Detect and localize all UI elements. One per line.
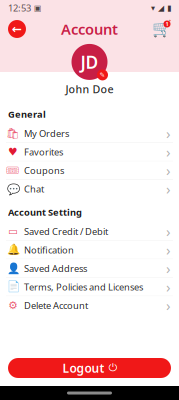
- staticText: Notification: [24, 244, 74, 256]
- staticText: ▾ ◢ ▮: [151, 3, 171, 13]
- staticText: ▣: [31, 3, 42, 13]
- staticText: ›: [166, 295, 171, 315]
- button[interactable]: ⚙: [0, 296, 179, 314]
- staticText: 🔔: [6, 244, 19, 256]
- staticText: 1: [165, 20, 168, 28]
- staticText: 📄: [6, 281, 19, 293]
- button[interactable]: 👤: [0, 259, 179, 277]
- staticText: ›: [166, 179, 171, 199]
- staticText: ⏻: [108, 363, 116, 373]
- staticText: ›: [166, 142, 171, 162]
- button[interactable]: 🎟: [0, 161, 179, 179]
- staticText: 🛒: [152, 20, 172, 38]
- staticText: Delete Account: [24, 299, 88, 311]
- staticText: 🛍: [6, 127, 20, 139]
- staticText: My Orders: [24, 127, 69, 140]
- staticText: ›: [166, 277, 171, 296]
- staticText: ›: [166, 240, 171, 259]
- staticText: Coupons: [24, 164, 64, 177]
- button[interactable]: 🛍: [0, 124, 179, 142]
- button[interactable]: ♥: [0, 143, 179, 161]
- button[interactable]: Back: [4, 16, 30, 42]
- staticText: 👤: [6, 262, 19, 274]
- staticText: General: [8, 108, 46, 120]
- button[interactable]: Cart: [149, 16, 175, 42]
- staticText: JD: [80, 50, 98, 73]
- staticText: ›: [166, 258, 171, 278]
- button[interactable]: Logout: [8, 358, 171, 378]
- staticText: Logout: [62, 360, 104, 376]
- staticText: Saved Address: [24, 262, 87, 274]
- staticText: John Doe: [65, 82, 113, 96]
- staticText: ←: [12, 22, 22, 36]
- staticText: Saved Credit / Debit: [24, 225, 108, 237]
- button[interactable]: 🔔: [0, 241, 179, 259]
- staticText: ›: [166, 161, 171, 180]
- button[interactable]: Edit profile photo: [97, 69, 108, 80]
- staticText: ›: [166, 124, 171, 143]
- staticText: 12:53: [8, 2, 31, 14]
- staticText: ✎: [99, 71, 105, 79]
- staticText: 🎟: [6, 164, 20, 176]
- button[interactable]: 📄: [0, 278, 179, 296]
- staticText: Favorites: [24, 146, 63, 158]
- staticText: Chat: [24, 183, 44, 195]
- staticText: ▭: [8, 225, 18, 237]
- staticText: ⚙: [8, 299, 18, 311]
- staticText: ♥: [8, 146, 18, 158]
- button[interactable]: ▭: [0, 222, 179, 240]
- staticText: Account: [61, 19, 118, 39]
- staticText: Account Setting: [8, 206, 82, 218]
- staticText: 💬: [6, 183, 19, 195]
- button[interactable]: 💬: [0, 180, 179, 198]
- staticText: Terms, Policies and Licenses: [24, 281, 143, 293]
- staticText: ›: [166, 221, 171, 241]
